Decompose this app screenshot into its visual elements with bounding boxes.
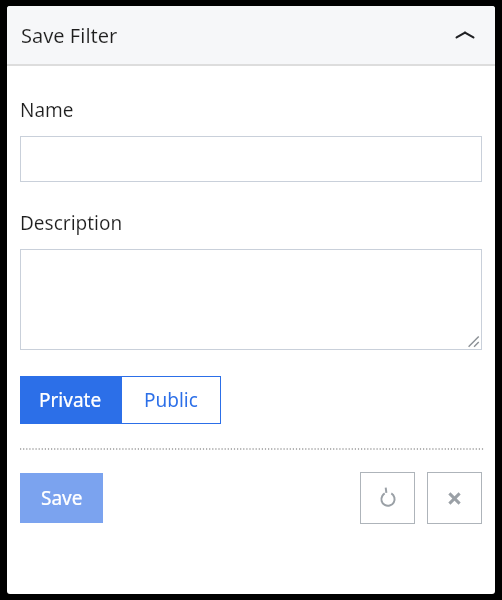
button[interactable]: Close [427, 472, 482, 524]
button[interactable]: Reset [360, 472, 415, 524]
button[interactable]: Private [20, 376, 121, 424]
button[interactable] [20, 136, 482, 182]
staticText: Description [20, 210, 123, 236]
staticText: Save [41, 485, 83, 511]
staticText: Public [144, 387, 198, 413]
button[interactable]: Public [121, 376, 221, 424]
button[interactable]: Collapse [447, 17, 483, 53]
button[interactable] [20, 249, 482, 350]
staticText: Name [20, 97, 74, 123]
staticText: Private [39, 387, 102, 413]
button[interactable]: Save Filter [7, 6, 495, 64]
staticText: Save Filter [21, 22, 118, 49]
button[interactable]: Save [20, 473, 103, 523]
